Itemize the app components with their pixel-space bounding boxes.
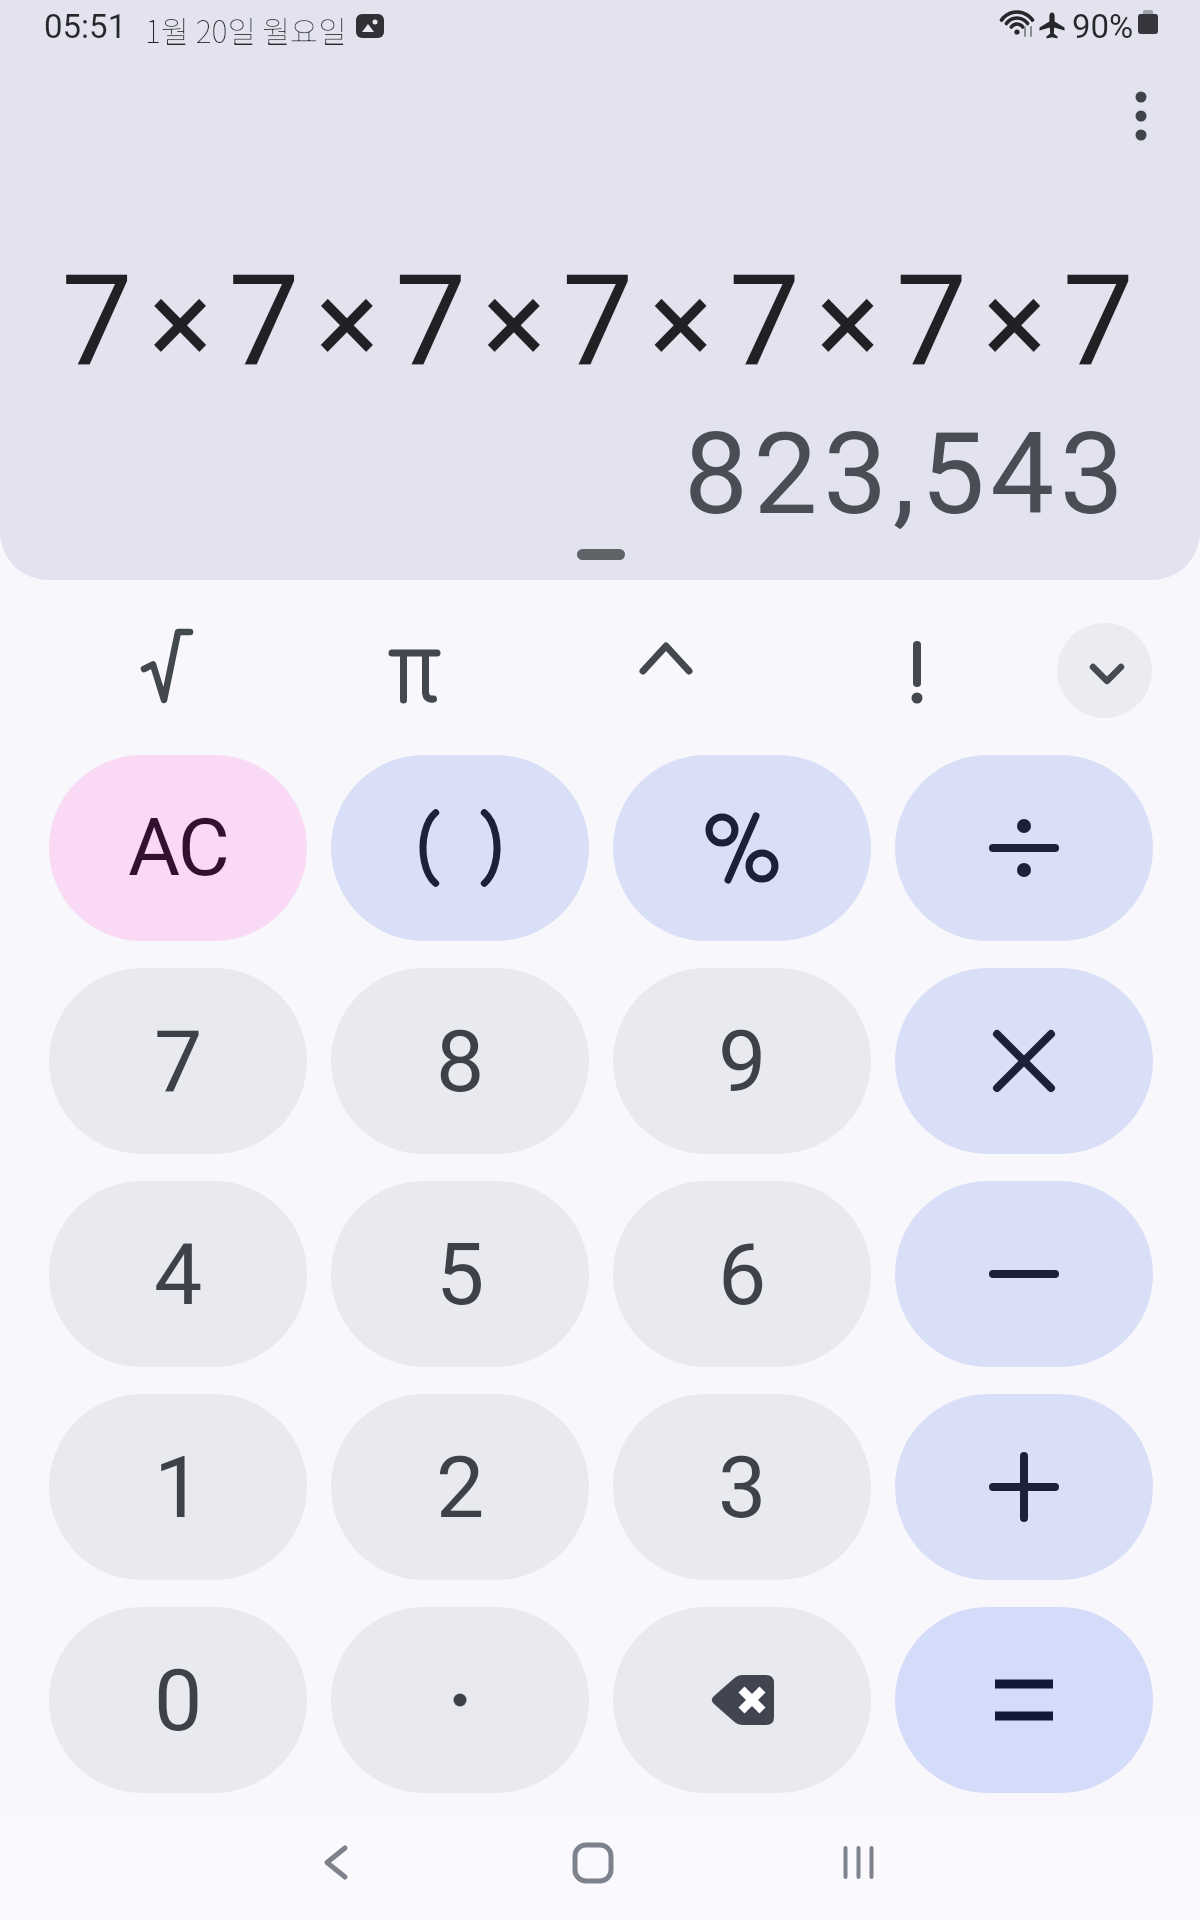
- button[interactable]: [553, 1822, 633, 1902]
- staticText: 3: [718, 1437, 767, 1538]
- button[interactable]: 4: [49, 1181, 307, 1367]
- staticText: 823,543: [684, 407, 1130, 541]
- staticText: 0: [154, 1650, 203, 1751]
- button[interactable]: [895, 755, 1153, 941]
- staticText: 6: [718, 1224, 767, 1325]
- button[interactable]: [293, 1822, 373, 1902]
- button[interactable]: 3: [613, 1394, 871, 1580]
- staticText: 9: [718, 1011, 767, 1112]
- button[interactable]: [359, 620, 469, 730]
- button[interactable]: [613, 1607, 871, 1793]
- button[interactable]: 8: [331, 968, 589, 1154]
- staticText: 2: [436, 1437, 485, 1538]
- staticText: 5: [436, 1224, 485, 1325]
- button[interactable]: 1: [49, 1394, 307, 1580]
- button[interactable]: 0: [49, 1607, 307, 1793]
- button[interactable]: [895, 1607, 1153, 1793]
- button[interactable]: [818, 1822, 898, 1902]
- staticText: 7: [154, 1011, 203, 1112]
- button[interactable]: [862, 616, 972, 726]
- button[interactable]: 2: [331, 1394, 589, 1580]
- button[interactable]: 7: [49, 968, 307, 1154]
- button[interactable]: [1057, 623, 1152, 718]
- staticText: 1월 20일 월요일: [145, 8, 347, 52]
- button[interactable]: [613, 755, 871, 941]
- button[interactable]: AC: [49, 755, 307, 941]
- staticText: 90%: [1072, 7, 1134, 46]
- staticText: 05:51: [44, 7, 127, 46]
- button[interactable]: [331, 755, 589, 941]
- button[interactable]: [895, 968, 1153, 1154]
- button[interactable]: [109, 611, 219, 721]
- staticText: AC: [128, 801, 228, 895]
- button[interactable]: 6: [613, 1181, 871, 1367]
- staticText: 7×7×7×7×7×7×7: [61, 246, 1150, 395]
- staticText: 1: [154, 1437, 203, 1538]
- button[interactable]: [895, 1181, 1153, 1367]
- button[interactable]: 9: [613, 968, 871, 1154]
- button[interactable]: [1111, 77, 1171, 155]
- staticText: 4: [154, 1224, 203, 1325]
- button[interactable]: [895, 1394, 1153, 1580]
- staticText: 8: [436, 1011, 485, 1112]
- button[interactable]: 5: [331, 1181, 589, 1367]
- button[interactable]: [331, 1607, 589, 1793]
- button[interactable]: [611, 605, 721, 715]
